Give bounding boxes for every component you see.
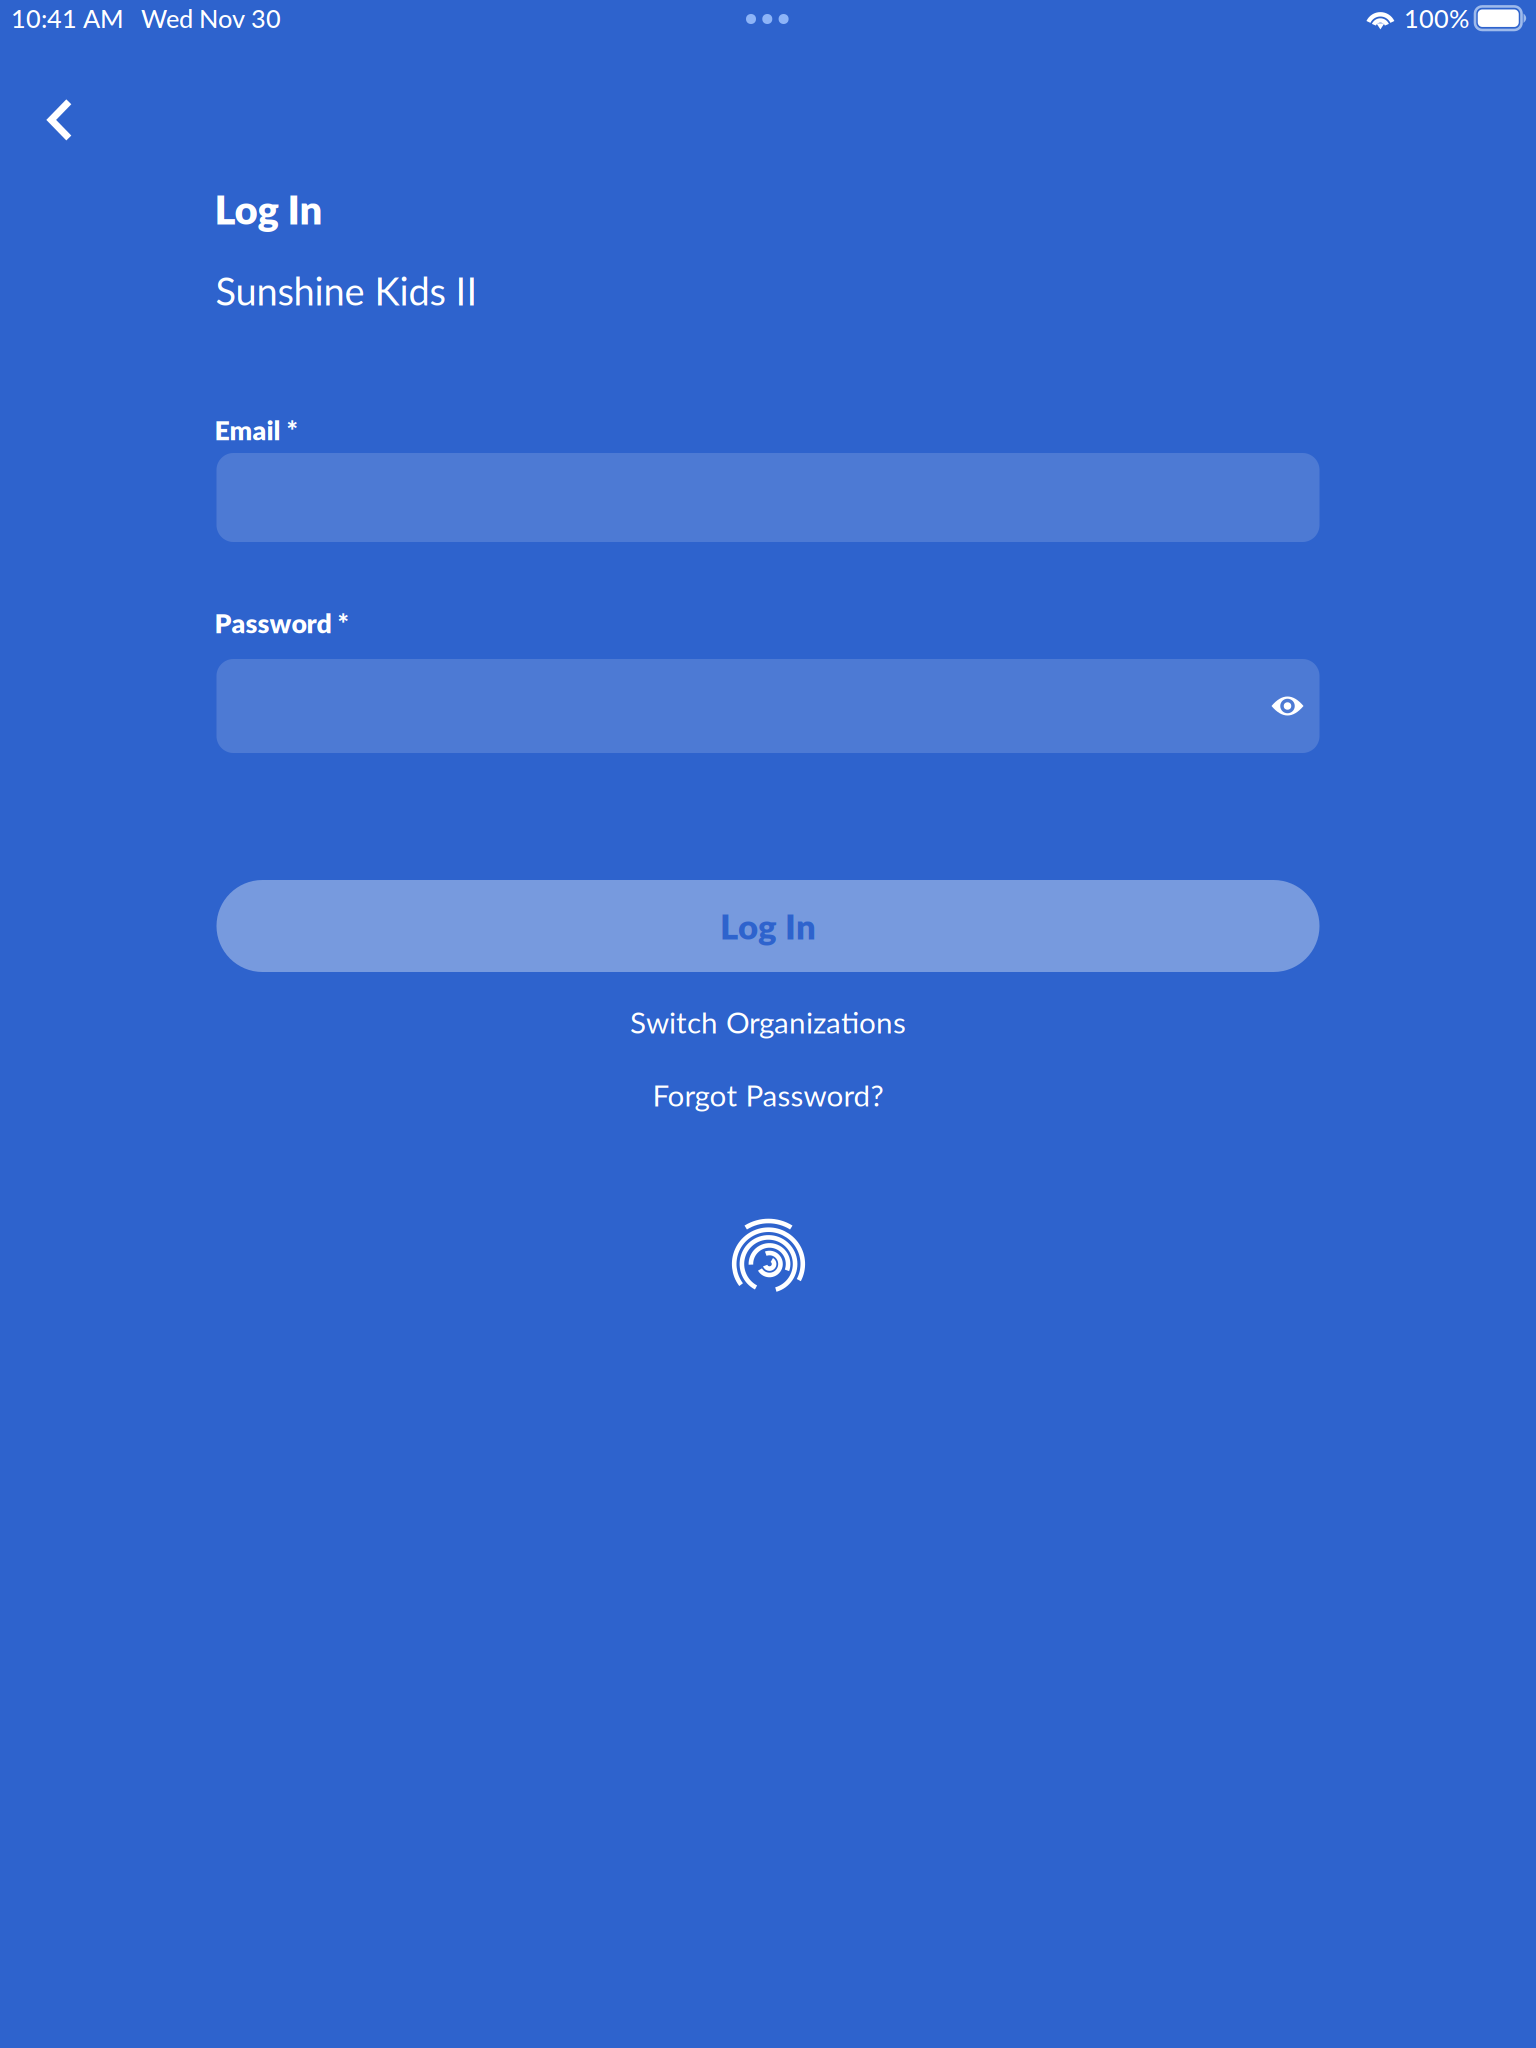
- button[interactable]: Sign in with Touch ID: [217, 1220, 1320, 1298]
- button[interactable]: Show password: [1271, 659, 1319, 752]
- staticText: Log In: [720, 905, 816, 947]
- staticText: Password *: [214, 607, 348, 639]
- button[interactable]: Forgot Password?: [216, 1073, 1319, 1117]
- staticText: Log In: [214, 185, 322, 233]
- button[interactable]: Switch Organizations: [216, 1000, 1319, 1044]
- button[interactable]: Back: [0, 0, 113, 160]
- staticText: Forgot Password?: [652, 1077, 883, 1113]
- button[interactable]: Log In: [216, 880, 1319, 972]
- staticText: Sunshine Kids II: [215, 268, 477, 314]
- staticText: 100%: [1404, 3, 1469, 33]
- staticText: Wed Nov 30: [141, 3, 281, 33]
- staticText: 10:41 AM: [11, 3, 124, 33]
- staticText: Email *: [214, 414, 297, 446]
- staticText: Switch Organizations: [630, 1004, 906, 1040]
